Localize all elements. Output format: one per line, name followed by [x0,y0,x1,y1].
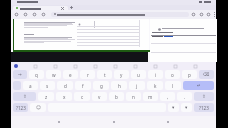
button[interactable]: j [129,81,145,90]
button[interactable]: . [177,92,192,101]
staticText: ⇧ [23,94,27,99]
staticText: ?123 [199,105,209,111]
button[interactable]: Menu [212,12,217,17]
button[interactable]: c [74,92,90,101]
button[interactable]: k [147,81,163,90]
button[interactable] [13,81,21,90]
button[interactable]: o [165,70,180,79]
staticText: ?123 [16,105,26,111]
button[interactable]: Back [14,12,19,17]
staticText: ☺ [36,105,41,110]
staticText: ▾ [185,105,188,110]
button[interactable]: w [46,70,61,79]
button[interactable]: h [111,81,127,90]
staticText: f [82,83,84,89]
button[interactable]: n [126,92,141,101]
button[interactable]: → [13,70,27,79]
staticText: k [154,83,157,89]
button[interactable]: , [160,92,175,101]
staticText: . [184,94,186,100]
button[interactable]: ↵ [183,81,214,90]
button[interactable]: Keyboard tool 5 [113,64,117,68]
button[interactable]: Keyboard tool 7 [153,64,157,68]
button[interactable]: Google [14,64,18,68]
staticText: j [136,83,138,89]
button[interactable]: ?123 [194,103,214,112]
staticText: , [167,94,169,100]
button[interactable]: q [29,70,44,79]
staticText: ⌫ [203,72,210,77]
button[interactable]: s [40,81,55,90]
staticText: a [29,83,32,89]
staticText: q [35,72,38,78]
button[interactable]: u [131,70,146,79]
button[interactable]: New tab [70,6,73,9]
button[interactable] [51,12,189,17]
staticText: b [115,94,118,100]
staticText: y [120,72,123,78]
button[interactable]: z [38,92,54,101]
staticText: x [63,94,66,100]
button[interactable]: Reload [32,12,37,17]
button[interactable]: i [148,70,163,79]
button[interactable]: Keyboard tool 9 [193,64,197,68]
button[interactable]: a [23,81,38,90]
button[interactable]: b [109,92,124,101]
button[interactable]: m [143,92,158,101]
button[interactable]: e [63,70,78,79]
button[interactable]: Home [107,116,121,128]
button[interactable]: f [75,81,91,90]
staticText: ⇧ [202,94,206,99]
button[interactable]: Recents [161,116,175,128]
button[interactable]: Extensions [191,12,196,17]
button[interactable]: Account [206,12,211,17]
staticText: c [81,94,84,100]
staticText: z [45,94,48,100]
button[interactable]: Close tab [13,6,68,11]
button[interactable]: Home [41,12,46,17]
button[interactable]: Keyboard tool 1 [33,64,37,68]
button[interactable]: ▾ [181,103,192,112]
staticText: l [172,83,174,89]
staticText: h [118,83,121,89]
button[interactable]: Keyboard tool 2 [53,64,57,68]
button[interactable]: Keyboard tool 4 [93,64,97,68]
button[interactable]: l [165,81,181,90]
button[interactable]: t [97,70,112,79]
staticText: v [98,94,101,100]
staticText: t [104,72,106,78]
button[interactable]: ⌫ [199,70,214,79]
staticText: e [69,72,72,78]
button[interactable]: Back [52,116,66,128]
button[interactable]: Keyboard tool 3 [73,64,77,68]
button[interactable]: x [56,92,72,101]
button[interactable]: r [80,70,95,79]
button[interactable]: d [57,81,73,90]
staticText: p [188,72,191,78]
button[interactable]: Profile [199,12,204,17]
button[interactable]: ☺ [30,103,46,112]
staticText: r [87,72,89,78]
button[interactable]: ⇧ [194,92,214,101]
staticText: d [64,83,67,89]
staticText: ▾ [172,105,175,110]
button[interactable]: p [182,70,197,79]
staticText: i [155,72,157,78]
button[interactable]: v [92,92,107,101]
button[interactable]: Keyboard tool 6 [133,64,137,68]
staticText: o [171,72,174,78]
button[interactable]: g [93,81,109,90]
button[interactable]: y [114,70,129,79]
staticText: w [52,72,56,78]
button[interactable]: Forward [23,12,28,17]
button[interactable]: Keyboard tool 8 [173,64,177,68]
button[interactable]: ⇧ [13,92,36,101]
staticText: u [137,72,140,78]
staticText: s [46,83,49,89]
button[interactable]: ?123 [13,103,28,112]
staticText: n [132,94,135,100]
button[interactable]: ▾ [168,103,179,112]
button[interactable]: Close tab [61,7,64,10]
staticText: g [100,83,103,89]
